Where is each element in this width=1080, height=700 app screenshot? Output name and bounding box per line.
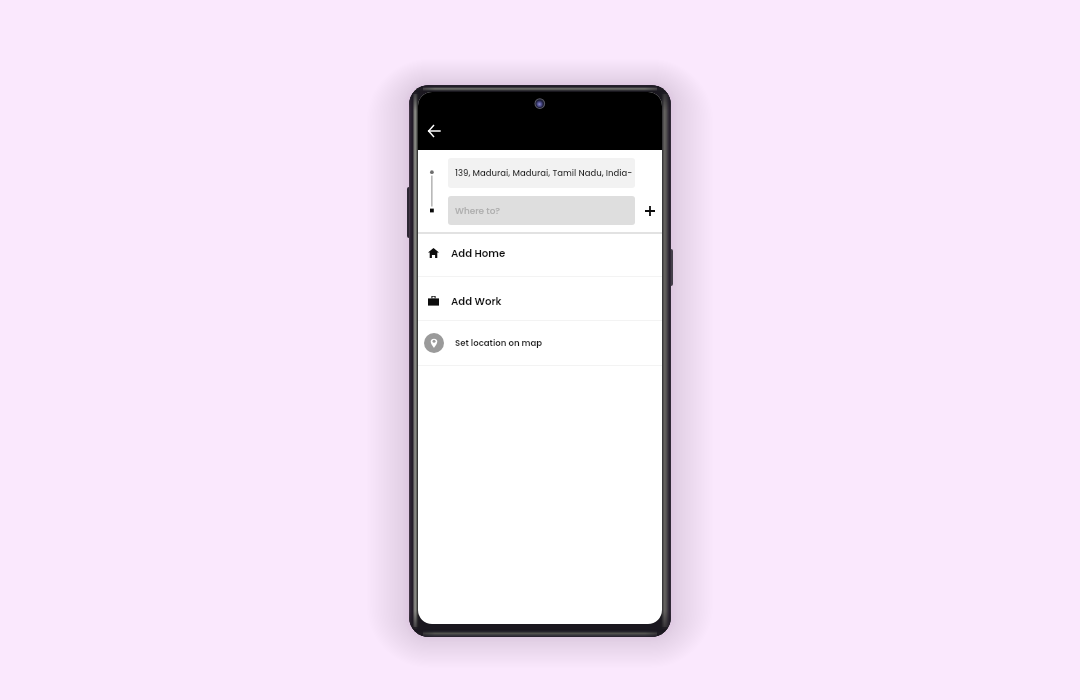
staticText: Add Work — [451, 294, 502, 308]
staticText: Where to? — [455, 205, 501, 217]
staticText: Set location on map — [455, 337, 543, 349]
button[interactable]: Where to? — [448, 196, 635, 225]
button[interactable]: 139, Madurai, Madurai, Tamil Nadu, India… — [448, 158, 635, 188]
button[interactable]: Add Work — [418, 277, 662, 320]
staticText: 139, Madurai, Madurai, Tamil Nadu, India… — [455, 167, 633, 179]
button[interactable]: Set location on map — [418, 321, 662, 365]
staticText: Add Home — [451, 246, 506, 260]
button[interactable]: Add stop — [637, 198, 662, 223]
button[interactable]: Back — [420, 117, 447, 144]
button[interactable]: Add Home — [418, 233, 662, 276]
